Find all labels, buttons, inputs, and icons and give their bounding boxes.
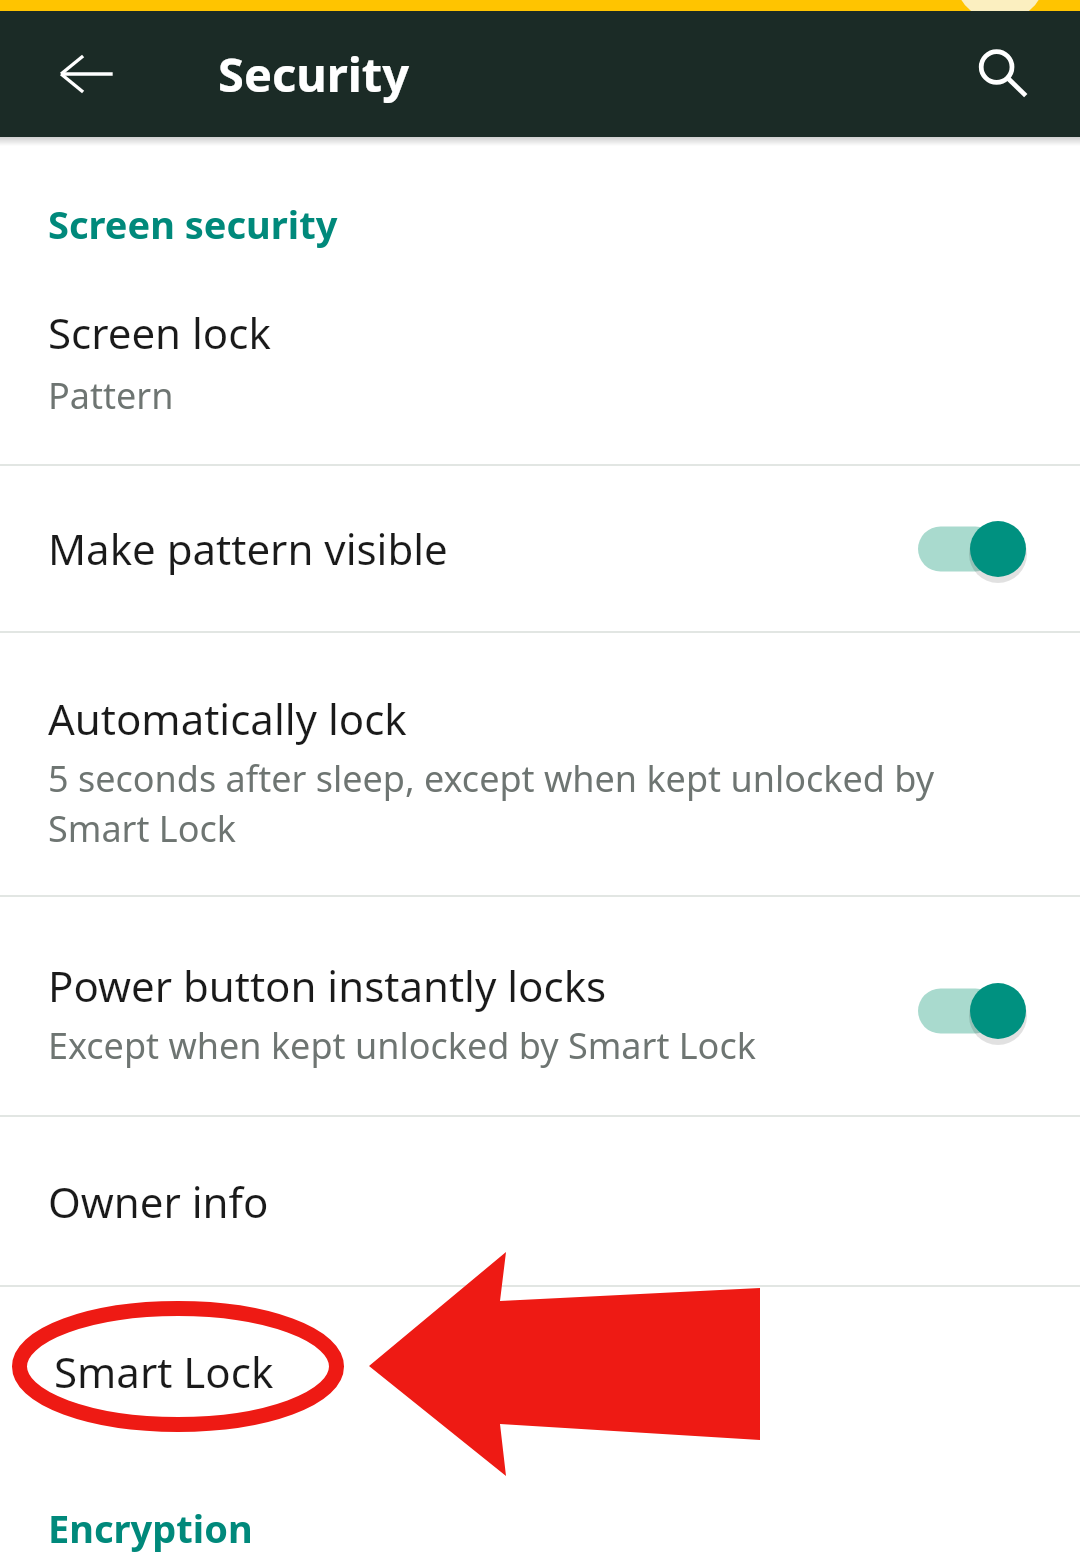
staticText: Smart Lock xyxy=(54,1343,274,1400)
staticText: Screen security xyxy=(48,198,338,250)
staticText: Screen lock xyxy=(48,304,271,361)
button[interactable]: Make pattern visible xyxy=(0,466,1080,631)
staticText: Make pattern visible xyxy=(48,520,448,577)
button[interactable]: Toggle on xyxy=(918,517,1028,581)
staticText: Owner info xyxy=(48,1173,269,1230)
button[interactable]: Owner info xyxy=(0,1117,1080,1285)
button[interactable]: Automatically lock xyxy=(0,633,1080,895)
staticText: 5 seconds after sleep, except when kept … xyxy=(48,754,1043,853)
button[interactable]: Search xyxy=(946,18,1058,130)
staticText: Pattern xyxy=(48,371,174,420)
button[interactable]: Back xyxy=(30,18,142,130)
staticText: Encryption xyxy=(48,1502,253,1554)
staticText: Except when kept unlocked by Smart Lock xyxy=(48,1021,756,1070)
button[interactable]: Screen lock xyxy=(0,276,1080,464)
button[interactable]: Toggle on xyxy=(918,979,1028,1043)
staticText: Automatically lock xyxy=(48,690,407,747)
button[interactable]: Power button instantly locks xyxy=(0,897,1080,1115)
staticText: Security xyxy=(218,42,410,106)
staticText: Power button instantly locks xyxy=(48,957,607,1014)
button[interactable]: Smart Lock xyxy=(0,1287,1080,1455)
